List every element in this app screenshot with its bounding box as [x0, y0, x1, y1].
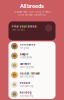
staticText: Find your breed — [12, 25, 37, 28]
staticText: Chihuahua — [20, 43, 35, 46]
staticText: Poodle — [20, 82, 30, 85]
button[interactable]: Poodle — [8, 80, 55, 89]
staticText: Golden retriever — [20, 72, 40, 75]
staticText: Hound group — [20, 56, 32, 59]
staticText: Sporting group — [20, 75, 34, 78]
staticText: All breeds — [20, 3, 44, 9]
staticText: Non-sporting — [20, 95, 33, 97]
staticText: Beagle — [20, 53, 28, 56]
button[interactable]: Chihuahua — [8, 41, 55, 51]
staticText: Discover over 200 dog breeds — [13, 10, 50, 13]
staticText: from around the world — [18, 13, 46, 16]
button[interactable]: Bulldog — [8, 89, 55, 99]
button[interactable]: Find your breed — [8, 21, 55, 40]
staticText: Labrador — [20, 62, 31, 65]
staticText: Toy group — [20, 47, 29, 49]
staticText: Sporting group — [20, 66, 34, 68]
button[interactable]: Beagle — [8, 51, 55, 61]
staticText: Non-sporting — [20, 85, 33, 88]
button[interactable]: Golden retriever — [8, 70, 55, 80]
staticText: Bulldog — [20, 91, 32, 94]
button[interactable]: Labrador — [8, 61, 55, 70]
staticText: Take the quiz — [12, 28, 25, 31]
